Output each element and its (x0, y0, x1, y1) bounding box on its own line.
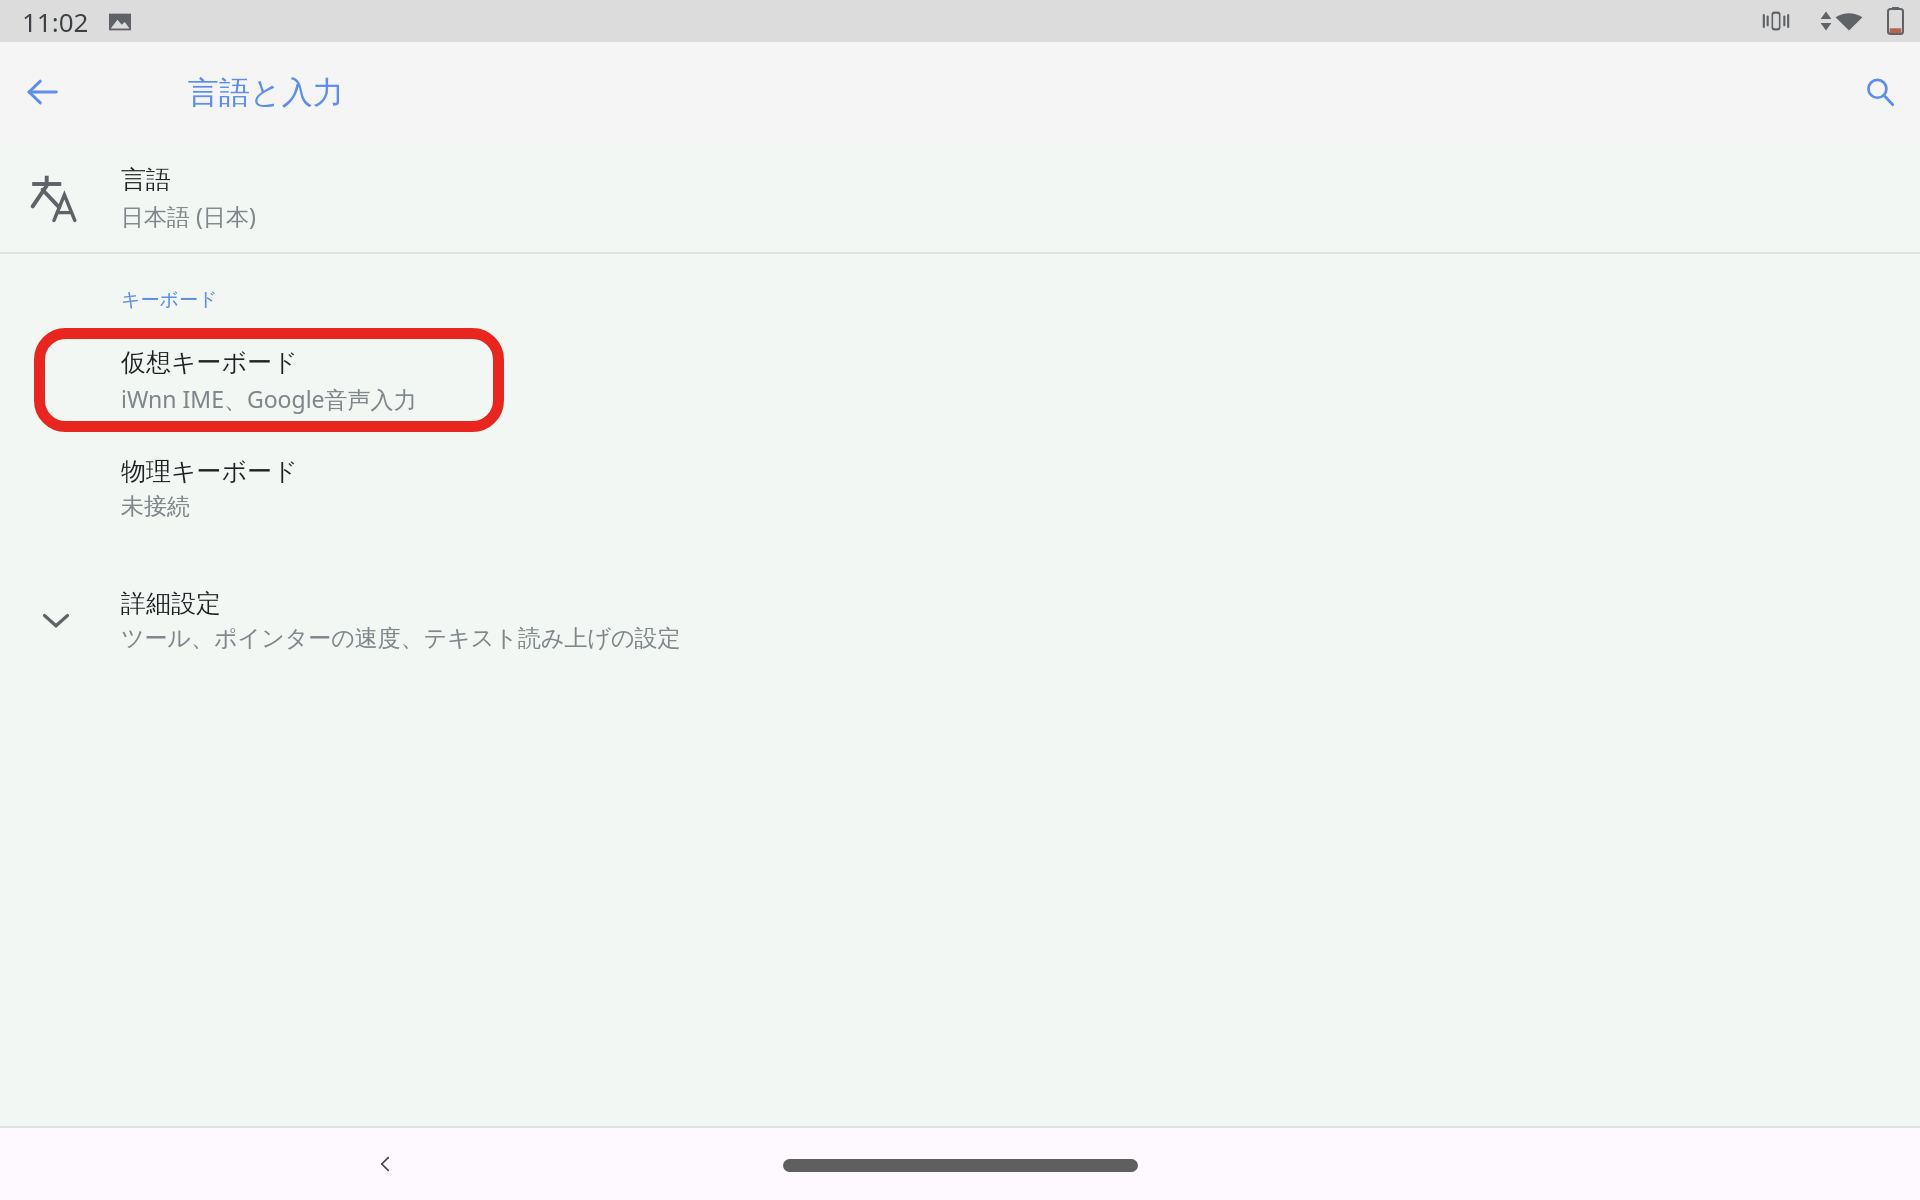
button[interactable]: 検索 (1848, 60, 1912, 124)
staticText: ツール、ポインターの速度、テキスト読み上げの設定 (121, 624, 681, 653)
staticText: 物理キーボード (121, 456, 298, 487)
button[interactable]: 詳細設定 (0, 568, 1920, 672)
button[interactable]: 物理キーボード (0, 436, 1920, 540)
staticText: キーボード (121, 288, 218, 312)
staticText: 日本語 (日本) (121, 200, 256, 231)
staticText: iWnn IME、Google音声入力 (121, 383, 417, 414)
button[interactable]: 仮想キーボード (0, 326, 1920, 434)
staticText: 未接続 (121, 492, 190, 521)
staticText: 言語 (121, 164, 171, 195)
button[interactable]: 戻る (355, 1134, 415, 1194)
button[interactable]: 言語 (0, 142, 1920, 252)
staticText: 詳細設定 (121, 588, 221, 619)
staticText: 仮想キーボード (121, 347, 298, 378)
button[interactable]: ホーム (783, 1159, 1138, 1172)
button[interactable]: 戻る (10, 60, 74, 124)
staticText: 言語と入力 (188, 73, 344, 112)
staticText: 11:02 (22, 4, 89, 39)
